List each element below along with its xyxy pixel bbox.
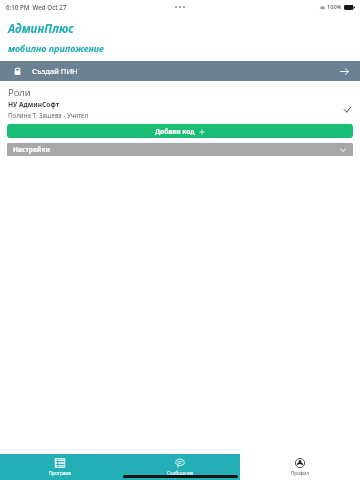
staticText: Полина Т. Зашева - Учител	[8, 111, 89, 119]
button[interactable]: Настройки	[7, 143, 353, 156]
staticText: Програма	[49, 470, 72, 476]
staticText: Роли	[8, 86, 31, 99]
staticText: мобилно приложение	[8, 42, 104, 54]
button[interactable]: НУ АдминСофт	[0, 99, 360, 119]
staticText: Настройки	[13, 145, 51, 154]
button[interactable]: Програма	[0, 454, 120, 480]
staticText: Профил	[291, 470, 309, 476]
button[interactable]: Добави код	[7, 124, 353, 138]
button[interactable]: Профил	[240, 454, 360, 480]
staticText: Съобщения	[167, 470, 194, 476]
staticText: НУ АдминСофт	[8, 100, 60, 109]
button[interactable]: Създай ПИН	[0, 61, 360, 81]
staticText: 100%	[327, 3, 342, 11]
staticText: Създай ПИН	[32, 66, 78, 76]
staticText: Добави код	[155, 127, 195, 136]
staticText: 6:10 PM Wed Oct 27	[6, 3, 67, 11]
staticText: АдминПлюс	[8, 21, 74, 37]
other: Напред	[339, 66, 350, 77]
button[interactable]: Съобщения	[120, 454, 240, 480]
